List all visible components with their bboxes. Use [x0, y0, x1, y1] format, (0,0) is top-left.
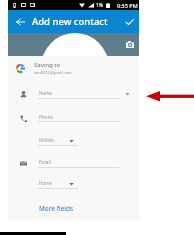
- button[interactable]: Saving to: [8, 59, 139, 77]
- button[interactable]: More fields: [36, 201, 77, 216]
- staticText: Mobile: [39, 137, 54, 143]
- staticText: Home: [39, 180, 53, 186]
- staticText: Saving to: [34, 61, 61, 69]
- button[interactable]: Email: [12, 152, 34, 174]
- staticText: dan8922@gmail.com: [34, 70, 72, 75]
- button[interactable]: Name: [37, 86, 126, 102]
- button[interactable]: Mobile: [37, 133, 81, 149]
- button[interactable]: Save contact: [122, 15, 136, 29]
- button[interactable]: Name: [12, 83, 34, 105]
- button[interactable]: Phone: [12, 107, 34, 129]
- button[interactable]: Phone: [37, 110, 119, 126]
- button[interactable]: Change photo: [123, 38, 136, 51]
- staticText: 9:55 PM: [117, 2, 138, 9]
- button[interactable]: Home: [37, 176, 81, 192]
- staticText: Email: [39, 159, 51, 165]
- staticText: 1%: [96, 2, 104, 9]
- button[interactable]: Email: [37, 155, 119, 171]
- staticText: Phone: [39, 114, 53, 120]
- button[interactable]: Back: [13, 15, 27, 29]
- staticText: Add new contact: [32, 15, 108, 28]
- staticText: More fields: [39, 204, 74, 213]
- staticText: Name: [39, 90, 52, 96]
